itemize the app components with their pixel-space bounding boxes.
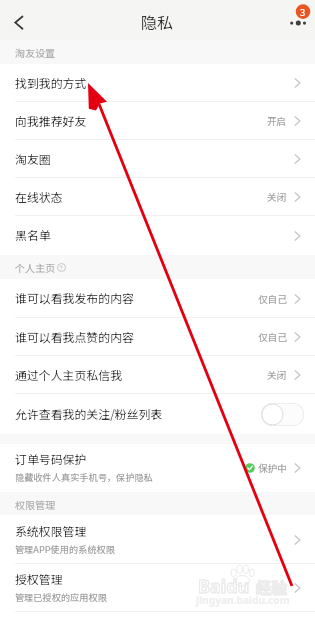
staticText: 黑名单 bbox=[15, 226, 51, 243]
staticText: 找到我的方式 bbox=[15, 74, 87, 91]
staticText: 隐藏收件人真实手机号，保护隐私 bbox=[15, 470, 153, 483]
button[interactable]: 找到我的方式 bbox=[0, 64, 315, 102]
staticText: 通过个人主页私信我 bbox=[15, 366, 123, 383]
staticText: 向我推荐好友 bbox=[15, 112, 87, 129]
staticText: 订单号码保护 bbox=[15, 450, 87, 467]
staticText: 淘友设置 bbox=[15, 45, 55, 59]
staticText: 隐私 bbox=[141, 10, 174, 33]
button[interactable]: 授权管理 bbox=[0, 564, 315, 612]
button[interactable]: Back bbox=[0, 1, 38, 39]
button[interactable]: 淘友圈 bbox=[0, 140, 315, 178]
staticText: 谁可以看我发布的内容 bbox=[15, 289, 134, 306]
staticText: 管理已授权的应用权限 bbox=[15, 590, 107, 603]
staticText: 仅自己 bbox=[258, 292, 287, 306]
staticText: 权限管理 bbox=[15, 497, 55, 511]
staticText: 关闭 bbox=[267, 190, 287, 204]
button[interactable]: 在线状态 bbox=[0, 178, 315, 216]
staticText: 开启 bbox=[267, 114, 287, 128]
staticText: 3 bbox=[300, 5, 306, 19]
staticText: 关闭 bbox=[267, 368, 287, 382]
button[interactable]: 系统权限管理 bbox=[0, 515, 315, 564]
button[interactable]: 订单号码保护 bbox=[0, 444, 315, 492]
button[interactable]: 通过个人主页私信我 bbox=[0, 356, 315, 394]
button[interactable]: 黑名单 bbox=[0, 216, 315, 255]
staticText: jingyan.baidu.com bbox=[196, 593, 290, 607]
staticText: 管理APP使用的系统权限 bbox=[15, 542, 115, 555]
staticText: 经验 bbox=[256, 576, 288, 598]
staticText: 仅自己 bbox=[258, 330, 287, 344]
staticText: 授权管理 bbox=[15, 570, 63, 587]
staticText: 淘友圈 bbox=[15, 150, 51, 167]
staticText: Baidu bbox=[198, 574, 250, 599]
button[interactable]: 允许查看我的关注/粉丝列表 bbox=[0, 394, 315, 434]
button[interactable]: More options bbox=[277, 1, 315, 39]
staticText: 系统权限管理 bbox=[15, 522, 87, 539]
button[interactable]: 谁可以看我点赞的内容 bbox=[0, 318, 315, 356]
button[interactable]: 向我推荐好友 bbox=[0, 102, 315, 140]
staticText: 个人主页 bbox=[15, 260, 55, 274]
staticText: 谁可以看我点赞的内容 bbox=[15, 328, 134, 345]
staticText: 允许查看我的关注/粉丝列表 bbox=[15, 405, 163, 422]
button[interactable]: 谁可以看我发布的内容 bbox=[0, 279, 315, 318]
staticText: 在线状态 bbox=[15, 188, 63, 205]
staticText: 保护中 bbox=[258, 461, 287, 475]
